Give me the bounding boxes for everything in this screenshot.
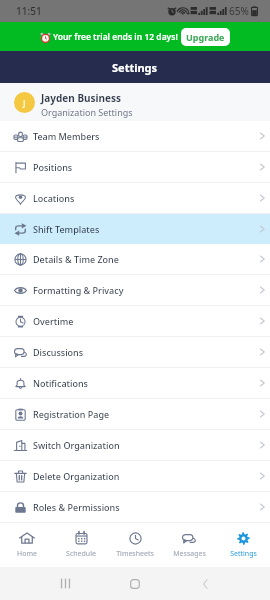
staticText: Timesheets	[116, 549, 154, 559]
staticText: Overtime	[33, 315, 74, 327]
button[interactable]: Details & Time Zone	[0, 244, 270, 274]
button[interactable]: Locations	[0, 183, 270, 213]
staticText: Notifications	[33, 377, 88, 389]
button[interactable]: Settings	[216, 523, 270, 567]
button[interactable]: Home	[97, 567, 173, 600]
staticText: Switch Organization	[33, 439, 120, 451]
button[interactable]: Discussions	[0, 337, 270, 367]
button[interactable]: Registration Page	[0, 399, 270, 429]
button[interactable]: Messages	[162, 523, 216, 567]
staticText: Home	[17, 549, 37, 559]
button[interactable]: J	[0, 83, 270, 121]
staticText: Settings	[230, 549, 257, 559]
button[interactable]: Schedule	[54, 523, 108, 567]
button[interactable]: Switch Organization	[0, 430, 270, 460]
button[interactable]: Team Members	[0, 121, 270, 151]
staticText: Discussions	[33, 346, 84, 358]
staticText: Registration Page	[33, 408, 110, 420]
staticText: Messages	[173, 549, 206, 559]
button[interactable]: Positions	[0, 152, 270, 182]
staticText: Positions	[33, 161, 73, 173]
staticText: Jayden Business	[41, 91, 122, 105]
button[interactable]: Notifications	[0, 368, 270, 398]
staticText: Organization Settings	[41, 106, 133, 118]
staticText: Your free trial ends in 12 days!	[53, 31, 178, 43]
button[interactable]: Timesheets	[108, 523, 162, 567]
staticText: Formatting & Privacy	[33, 284, 124, 296]
button[interactable]: Recent apps	[33, 567, 97, 600]
button[interactable]: Overtime	[0, 306, 270, 336]
staticText: Settings	[112, 60, 158, 75]
staticText: 65%	[229, 4, 249, 18]
staticText: 11:51	[16, 4, 42, 18]
staticText: Upgrade	[186, 31, 225, 43]
staticText: Delete Organization	[33, 470, 120, 482]
staticText: Roles & Permissions	[33, 501, 120, 513]
button[interactable]: Delete Organization	[0, 461, 270, 491]
button[interactable]: Roles & Permissions	[0, 492, 270, 522]
button[interactable]: Formatting & Privacy	[0, 275, 270, 305]
staticText: Details & Time Zone	[33, 253, 119, 265]
staticText: Schedule	[66, 549, 96, 559]
button[interactable]: Shift Templates	[0, 214, 270, 244]
button[interactable]: Upgrade	[181, 28, 230, 46]
staticText: J	[23, 97, 26, 109]
button[interactable]: Home	[0, 523, 54, 567]
staticText: Team Members	[33, 130, 100, 142]
staticText: Locations	[33, 192, 75, 204]
staticText: Shift Templates	[33, 223, 100, 235]
